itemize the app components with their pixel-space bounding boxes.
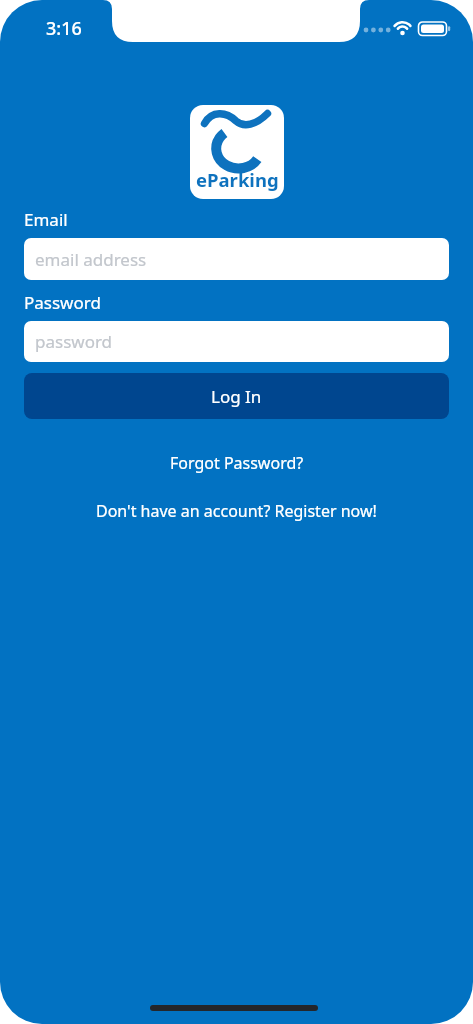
staticText: password bbox=[35, 330, 113, 353]
staticText: Log In bbox=[211, 385, 262, 408]
button[interactable]: Log In bbox=[24, 373, 449, 419]
button[interactable]: Don't have an account? Register now! bbox=[96, 500, 377, 522]
staticText: Email bbox=[24, 208, 68, 231]
staticText: email address bbox=[35, 248, 147, 271]
button[interactable]: password bbox=[24, 321, 449, 362]
staticText: eParking bbox=[196, 167, 279, 192]
button[interactable]: email address bbox=[24, 238, 449, 280]
staticText: 3:16 bbox=[46, 16, 82, 41]
staticText: Password bbox=[24, 291, 101, 314]
button[interactable]: Forgot Password? bbox=[170, 452, 304, 474]
